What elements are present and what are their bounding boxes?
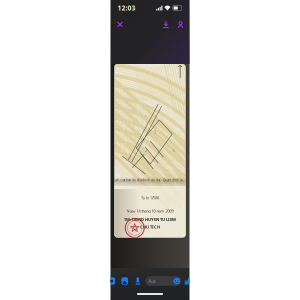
button[interactable]: Download — [159, 17, 173, 32]
staticText: Ty le 1/500 — [141, 195, 159, 200]
button[interactable]: Voice message — [132, 275, 143, 287]
staticText: 5 — [173, 148, 175, 153]
staticText: a.b.c cac ban do dia chinh do dac - Quye… — [115, 178, 185, 182]
staticText: 12:03 — [117, 3, 135, 13]
button[interactable]: Close — [112, 17, 127, 32]
button[interactable]: Aa — [145, 276, 181, 286]
button[interactable]: Send a like — [183, 275, 194, 287]
button[interactable]: Photos — [119, 275, 130, 287]
staticText: TM. UBND HUYEN TU LIEM — [124, 216, 176, 222]
staticText: 3 — [154, 130, 156, 134]
button[interactable]: Profile — [173, 17, 187, 32]
staticText: Ngay 14 thang 10 nam 2009 — [126, 208, 173, 214]
staticText: CHU TICH — [140, 224, 160, 230]
button[interactable]: Camera — [106, 275, 117, 287]
staticText: 2 — [145, 148, 147, 153]
staticText: Aa — [148, 277, 155, 285]
